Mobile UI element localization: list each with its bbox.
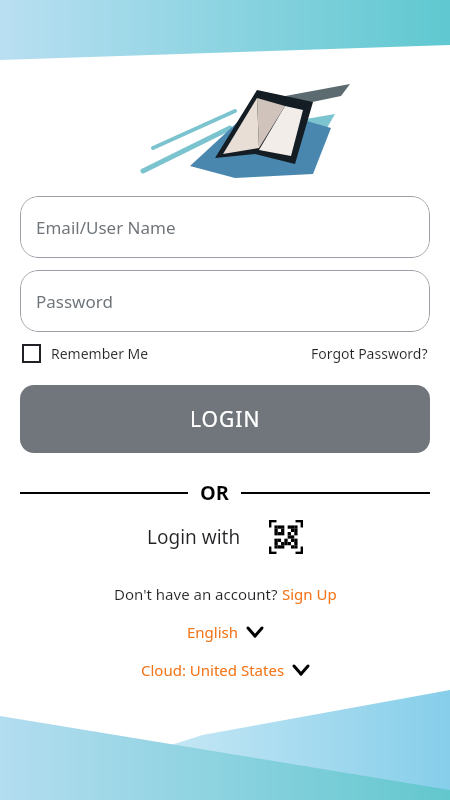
button[interactable]: Cloud: United States bbox=[141, 660, 309, 680]
button[interactable]: Forgot Password? bbox=[311, 344, 428, 363]
staticText: Login with bbox=[147, 524, 241, 550]
button[interactable]: Email/User Name bbox=[20, 196, 430, 258]
button[interactable]: Login with QR code bbox=[269, 520, 303, 554]
button[interactable]: Don't have an account? bbox=[114, 584, 337, 604]
staticText: Sign Up bbox=[282, 584, 337, 604]
staticText: Password bbox=[36, 290, 113, 313]
staticText: Email/User Name bbox=[36, 216, 176, 239]
staticText: Remember Me bbox=[51, 344, 149, 363]
staticText: LOGIN bbox=[190, 405, 261, 434]
button[interactable]: Remember Me bbox=[22, 344, 149, 363]
staticText: Don't have an account? bbox=[114, 584, 282, 604]
staticText: Cloud: United States bbox=[141, 660, 285, 680]
button[interactable]: English bbox=[187, 622, 263, 642]
staticText: English bbox=[187, 622, 239, 642]
button[interactable]: LOGIN bbox=[20, 385, 430, 453]
button[interactable]: Password bbox=[20, 270, 430, 332]
staticText: OR bbox=[200, 479, 229, 506]
